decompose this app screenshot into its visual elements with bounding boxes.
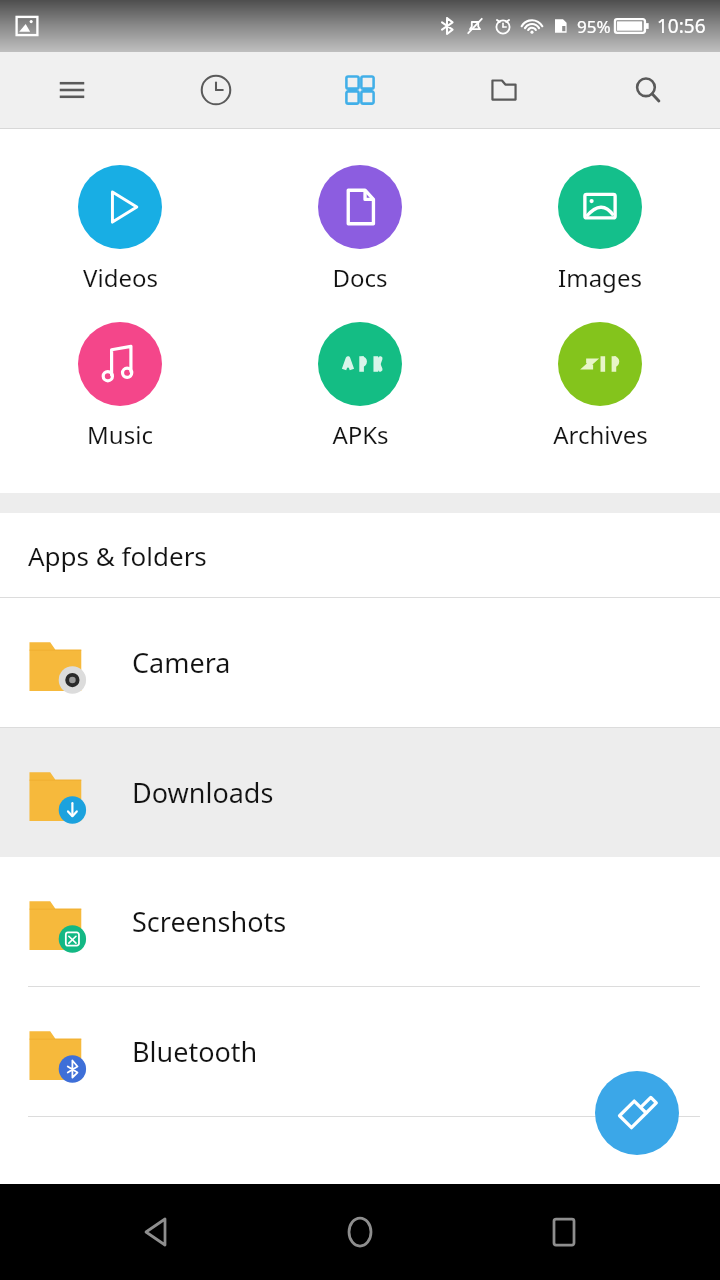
staticText: Archives (553, 418, 648, 451)
button[interactable]: Recents (516, 1184, 612, 1280)
button[interactable]: Docs (240, 161, 480, 298)
button[interactable]: Bluetooth (0, 987, 720, 1116)
button[interactable]: Images (480, 161, 720, 298)
button[interactable]: Back (108, 1184, 204, 1280)
staticText: 95% (577, 15, 611, 38)
staticText: Images (558, 261, 642, 294)
button[interactable]: Recent (144, 52, 288, 128)
button[interactable]: Music (0, 318, 240, 455)
button[interactable]: Archives (480, 318, 720, 455)
button[interactable]: Categories (288, 52, 432, 128)
button[interactable]: Menu (0, 52, 144, 128)
button[interactable]: APKs (240, 318, 480, 455)
staticText: Bluetooth (132, 1033, 258, 1070)
staticText: APKs (332, 418, 389, 451)
button[interactable]: Videos (0, 161, 240, 298)
staticText: 10:56 (657, 13, 706, 39)
button[interactable]: Screenshots (0, 857, 720, 986)
staticText: Apps & folders (28, 538, 207, 573)
staticText: Videos (83, 261, 158, 294)
staticText: Docs (332, 261, 388, 294)
button[interactable]: Clean (595, 1071, 679, 1155)
button[interactable]: Camera (0, 598, 720, 727)
staticText: Screenshots (132, 903, 287, 940)
staticText: Camera (132, 644, 231, 681)
staticText: Downloads (132, 774, 274, 811)
button[interactable]: Downloads (0, 728, 720, 857)
button[interactable]: Files (432, 52, 576, 128)
button[interactable]: Search (576, 52, 720, 128)
staticText: Music (87, 418, 153, 451)
button[interactable]: Home (312, 1184, 408, 1280)
